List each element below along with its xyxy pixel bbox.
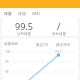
staticText: 体脂 (18, 11, 26, 16)
staticText: 最近30天 (56, 42, 71, 47)
button[interactable]: 体重 (1, 11, 15, 16)
button[interactable]: 最近7天 (35, 41, 50, 48)
staticText: 99.5 (55, 49, 62, 54)
staticText: 99.5 (15, 20, 33, 32)
staticText: 体重趋势 (4, 42, 18, 46)
staticText: 体重 (4, 11, 12, 16)
staticText: 98 (5, 70, 9, 74)
button[interactable]: 体重趋势 (3, 41, 19, 47)
button[interactable]: 最近30天 (55, 41, 72, 48)
staticText: / (57, 20, 61, 32)
staticText: BMI (32, 11, 40, 16)
staticText: 当前体重 (17, 32, 31, 36)
staticText: 目标体重 (52, 32, 66, 36)
button[interactable]: 99.5 (2, 18, 78, 36)
staticText: 100 (5, 50, 11, 54)
button[interactable]: BMI (29, 11, 43, 16)
button[interactable]: 体脂 (15, 11, 29, 16)
staticText: 最近7天 (36, 42, 49, 47)
staticText: 99 (5, 60, 9, 64)
